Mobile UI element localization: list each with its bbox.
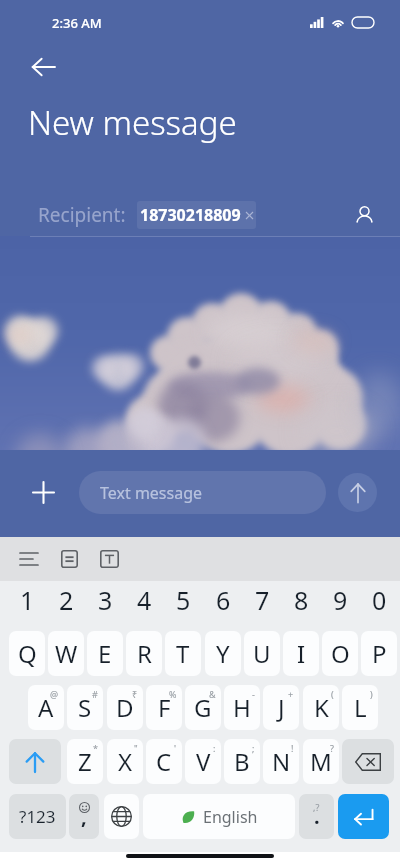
staticText: 5 (176, 583, 191, 617)
staticText: 2:36 AM (52, 14, 102, 32)
staticText: , (81, 803, 87, 830)
staticText: . (314, 803, 320, 830)
staticText: : (213, 742, 216, 754)
staticText: ' (174, 742, 177, 754)
button[interactable]: G (185, 685, 221, 730)
button[interactable]: Period (299, 794, 334, 839)
button[interactable]: 1 (9, 582, 45, 618)
button[interactable]: Add attachment (21, 470, 66, 515)
button[interactable]: 5 (165, 582, 201, 618)
button[interactable]: Z (67, 739, 103, 784)
button[interactable]: D (107, 685, 143, 730)
button[interactable]: N (263, 739, 299, 784)
button[interactable]: Space (143, 794, 295, 839)
button[interactable]: K (303, 685, 339, 730)
button[interactable]: Backspace (342, 739, 394, 784)
button[interactable]: L (342, 685, 378, 730)
staticText: D (116, 691, 134, 724)
button[interactable]: V (185, 739, 221, 784)
staticText: B (234, 745, 250, 778)
button[interactable]: B (224, 739, 260, 784)
button[interactable]: Choose contact (344, 195, 384, 235)
button[interactable]: 18730218809 (140, 204, 253, 226)
staticText: N (272, 745, 291, 778)
staticText: Text message (100, 482, 203, 504)
staticText: H (233, 691, 251, 724)
button[interactable]: 0 (361, 582, 397, 618)
staticText: Z (78, 745, 92, 778)
staticText: 9 (333, 583, 348, 617)
button[interactable]: Text message (79, 471, 326, 514)
button[interactable]: Symbols (9, 794, 66, 839)
staticText: ? (330, 742, 334, 754)
button[interactable]: 4 (126, 582, 162, 618)
button[interactable]: Comma (69, 794, 99, 839)
staticText: ( (331, 688, 334, 700)
button[interactable]: 6 (205, 582, 241, 618)
button[interactable]: 7 (244, 582, 280, 618)
staticText: + (288, 688, 294, 700)
button[interactable]: A (28, 685, 64, 730)
button[interactable]: Clipboard (51, 541, 87, 577)
staticText: ?123 (19, 805, 56, 828)
button[interactable]: Send (338, 473, 377, 512)
button[interactable]: O (322, 631, 358, 676)
staticText: English (203, 806, 258, 828)
staticText: ₹ (132, 688, 138, 700)
button[interactable]: F (146, 685, 182, 730)
staticText: S (78, 691, 92, 724)
button[interactable]: 3 (87, 582, 123, 618)
staticText: O (331, 637, 350, 670)
staticText: I (297, 637, 306, 670)
button[interactable]: Y (205, 631, 241, 676)
staticText: L (354, 691, 367, 724)
button[interactable]: M (303, 739, 339, 784)
button[interactable]: X (107, 739, 143, 784)
staticText: J (278, 691, 285, 724)
staticText: 1 (20, 583, 35, 617)
staticText: New message (28, 100, 237, 145)
button[interactable]: S (67, 685, 103, 730)
staticText: % (169, 688, 177, 700)
staticText: Q (18, 637, 37, 670)
staticText: ,? (313, 801, 320, 813)
button[interactable]: R (126, 631, 162, 676)
staticText: 3 (98, 583, 113, 617)
button[interactable]: Back (21, 45, 65, 89)
button[interactable]: H (224, 685, 260, 730)
staticText: R (137, 637, 152, 670)
staticText: 2 (59, 583, 74, 617)
button[interactable]: P (361, 631, 397, 676)
button[interactable]: U (244, 631, 280, 676)
button[interactable]: J (263, 685, 299, 730)
staticText: ) (370, 688, 373, 700)
button[interactable]: Change language (104, 794, 139, 839)
staticText: & (209, 688, 216, 700)
staticText: - (252, 688, 255, 700)
staticText: M (310, 745, 332, 778)
staticText: E (98, 637, 112, 670)
button[interactable]: 8 (283, 582, 319, 618)
staticText: C (156, 745, 172, 778)
button[interactable]: 9 (322, 582, 358, 618)
staticText: 8 (294, 583, 309, 617)
button[interactable]: C (146, 739, 182, 784)
button[interactable]: T (165, 631, 201, 676)
button[interactable]: I (283, 631, 319, 676)
staticText: G (194, 691, 212, 724)
staticText: V (196, 745, 211, 778)
button[interactable]: Q (9, 631, 45, 676)
staticText: W (55, 637, 78, 670)
staticText: 7 (255, 583, 270, 617)
button[interactable]: Text editing (91, 541, 127, 577)
button[interactable]: 2 (48, 582, 84, 618)
staticText: 18730218809 (140, 204, 241, 226)
button[interactable]: W (48, 631, 84, 676)
button[interactable]: Shift (9, 739, 61, 784)
staticText: P (372, 637, 387, 670)
staticText: K (314, 691, 329, 724)
staticText: 6 (216, 583, 231, 617)
button[interactable]: Keyboard menu (11, 542, 47, 576)
button[interactable]: E (87, 631, 123, 676)
button[interactable]: Enter (338, 794, 389, 839)
